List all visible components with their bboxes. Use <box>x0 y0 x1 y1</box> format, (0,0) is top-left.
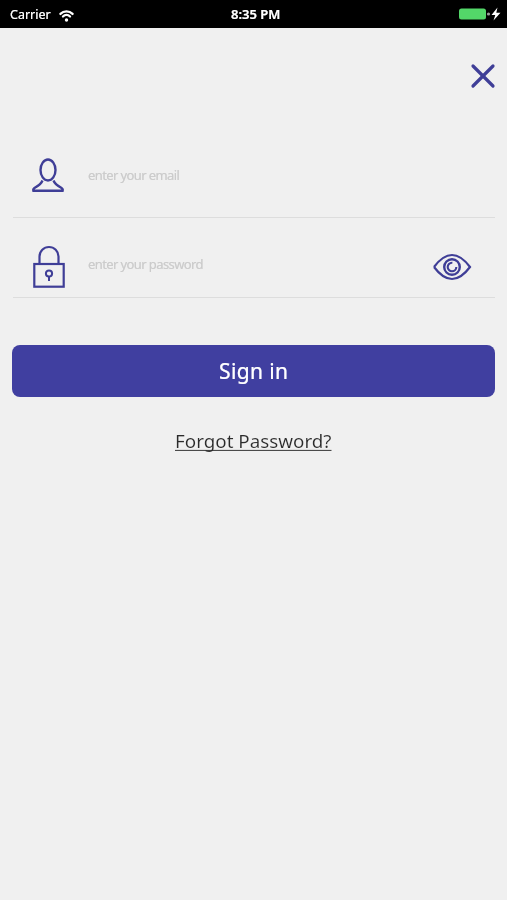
staticText: Sign in <box>219 357 289 386</box>
button[interactable] <box>466 59 500 93</box>
staticText: 8:35 PM <box>231 5 281 23</box>
staticText: enter your email <box>88 166 180 184</box>
button[interactable] <box>427 249 477 285</box>
staticText: Carrier <box>10 6 51 23</box>
button[interactable]: Sign in <box>12 345 495 397</box>
staticText: enter your password <box>88 255 203 273</box>
button[interactable]: Forgot Password? <box>175 428 332 454</box>
